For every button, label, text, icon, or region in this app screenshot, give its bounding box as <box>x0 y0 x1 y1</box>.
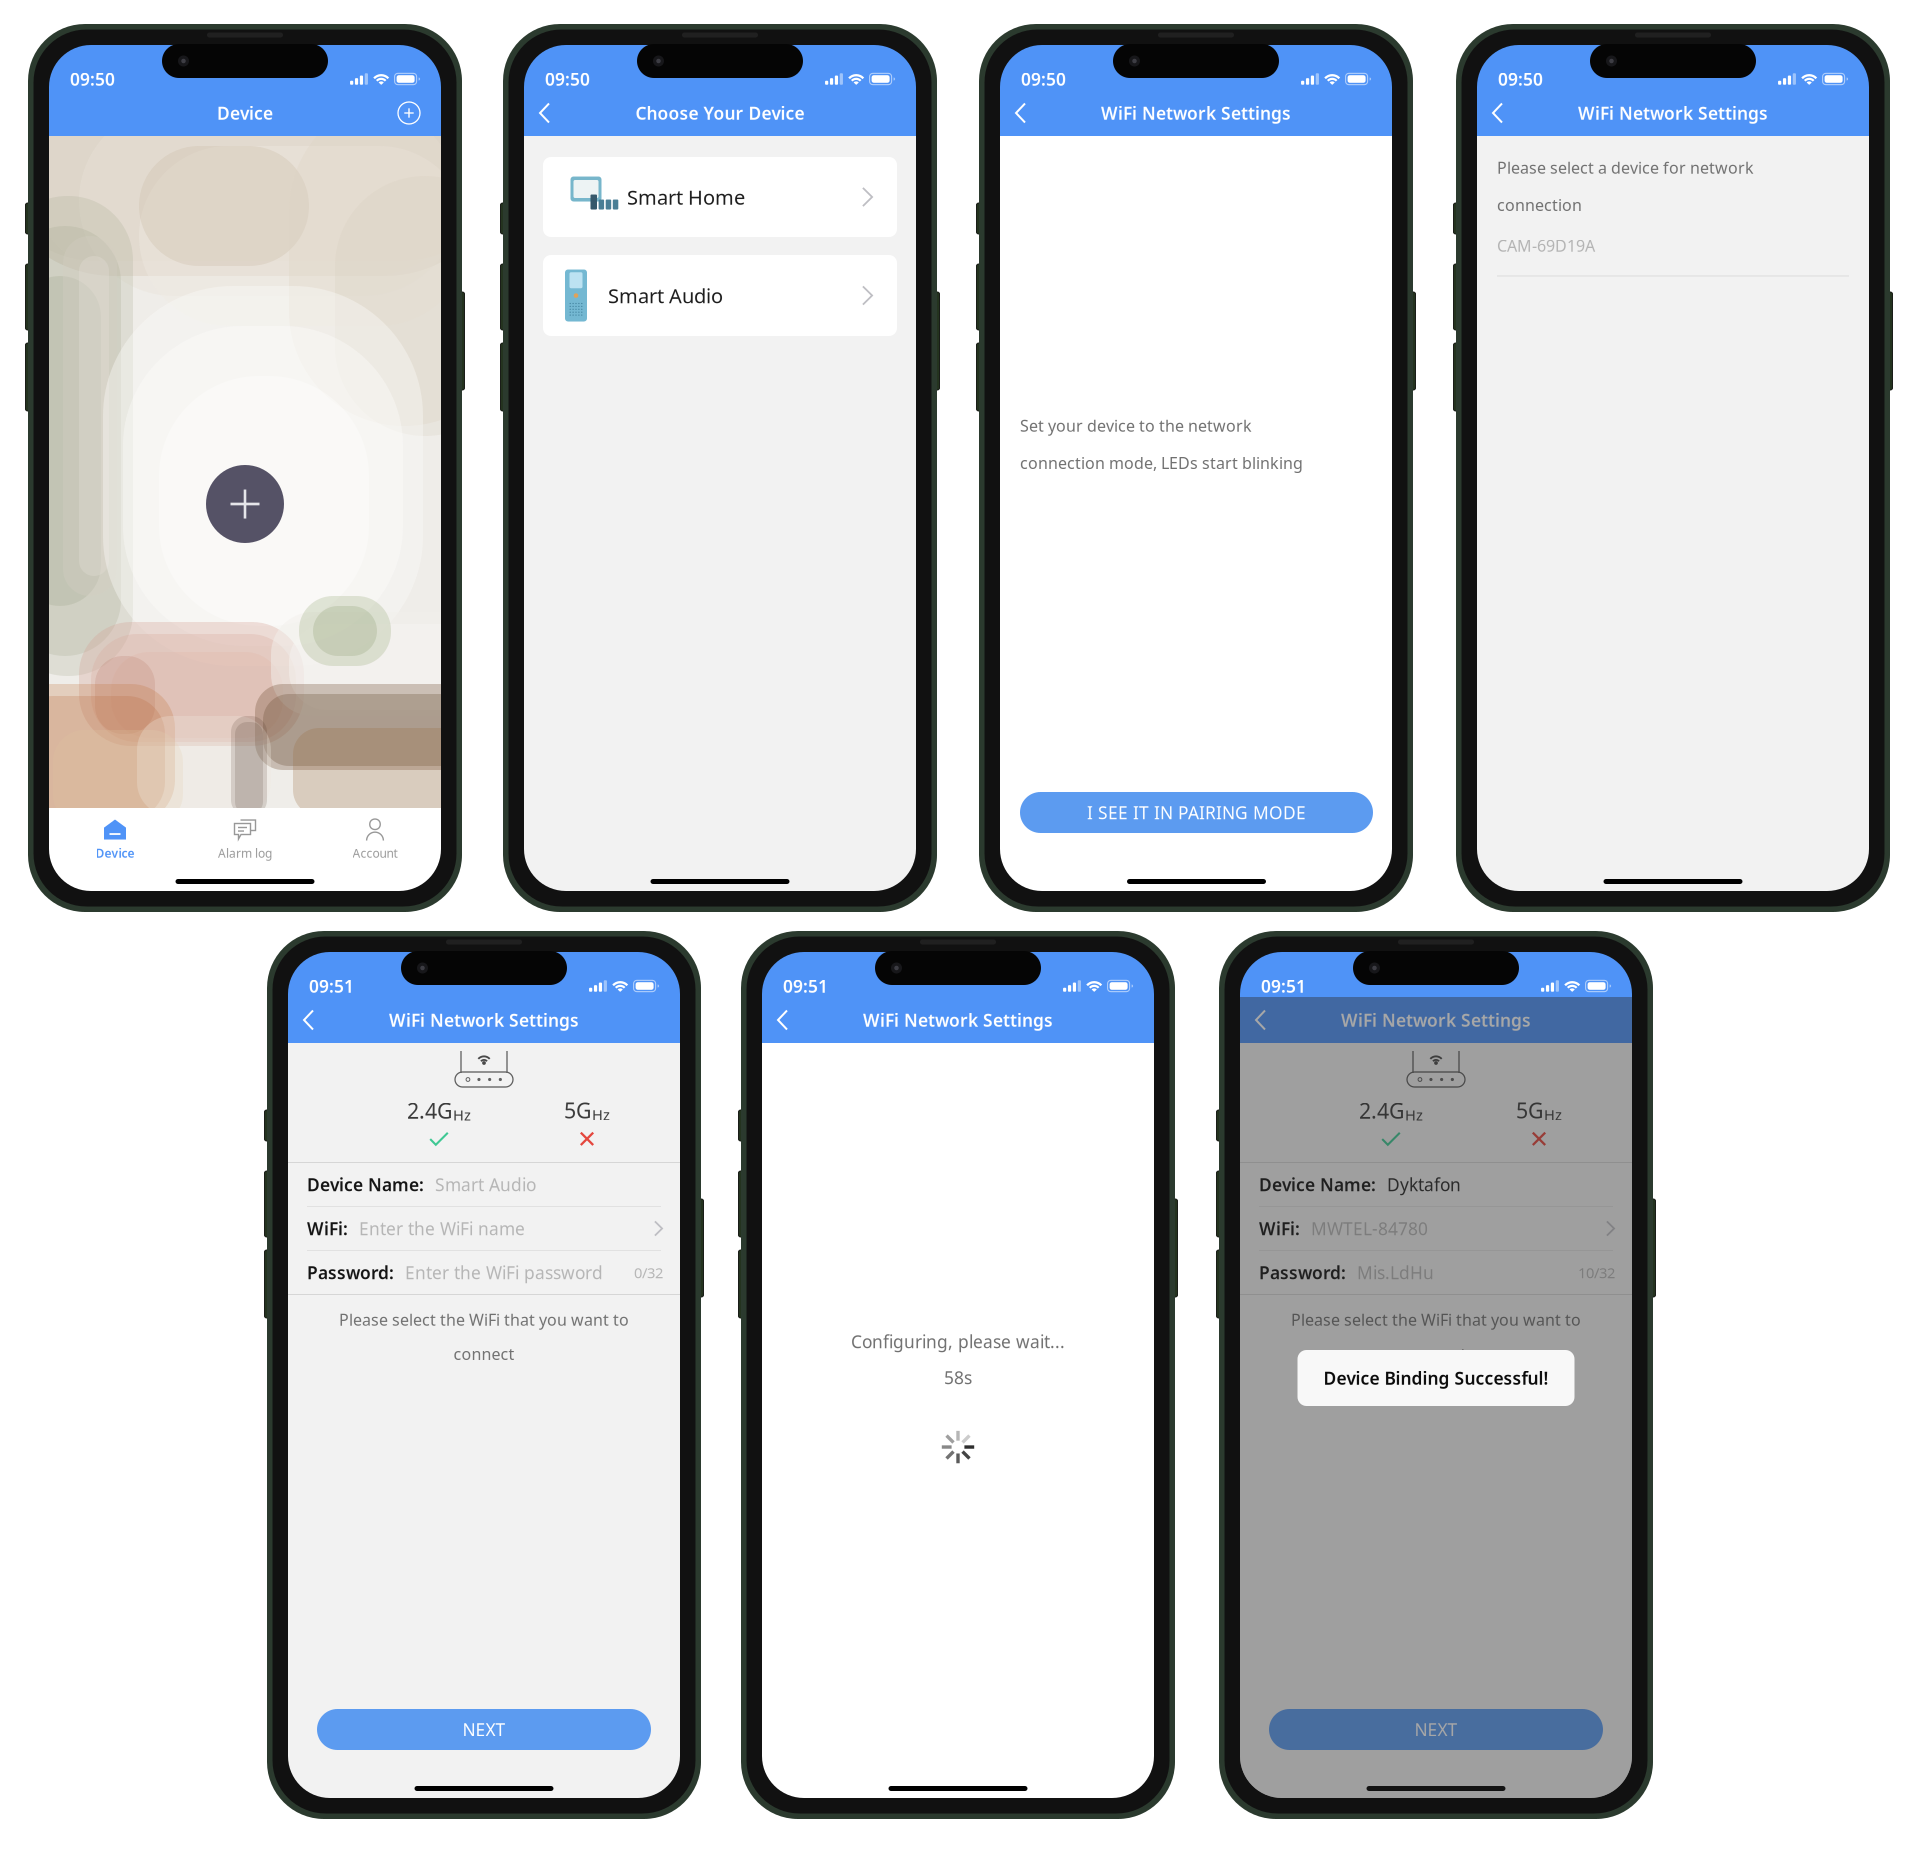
staticText: 5G <box>1516 1096 1544 1124</box>
button[interactable]: Smart Audio <box>543 255 897 336</box>
staticText: Smart Audio <box>608 282 723 309</box>
button[interactable]: NEXT <box>1269 1709 1603 1750</box>
staticText: Hz <box>1405 1105 1423 1125</box>
button[interactable]: Back <box>524 90 577 136</box>
button[interactable]: CAM-69D19A <box>1497 215 1849 275</box>
button[interactable]: Back <box>762 997 815 1043</box>
button[interactable]: WiFi: <box>1240 1207 1632 1250</box>
staticText: 2.4G <box>1359 1096 1405 1124</box>
staticText: Device <box>217 101 273 124</box>
staticText: WiFi Network Settings <box>863 1008 1053 1031</box>
button[interactable]: Smart Home <box>543 157 897 237</box>
staticText: connection <box>1497 194 1582 215</box>
staticText: CAM-69D19A <box>1497 235 1595 256</box>
button[interactable]: WiFi: <box>288 1207 680 1250</box>
staticText: 58s <box>944 1366 972 1389</box>
staticText: 09:50 <box>545 67 590 90</box>
staticText: Smart Audio <box>435 1173 536 1196</box>
button[interactable]: Back <box>288 997 341 1043</box>
staticText: Please select a device for network <box>1497 157 1754 178</box>
staticText: Set your device to the network <box>1020 415 1252 436</box>
staticText: Device Binding Successful! <box>1323 1366 1548 1389</box>
staticText: Enter the WiFi name <box>359 1217 525 1240</box>
staticText: Password: <box>307 1261 394 1284</box>
staticText: 2.4G <box>407 1096 453 1124</box>
staticText: 09:51 <box>783 974 828 997</box>
staticText: I SEE IT IN PAIRING MODE <box>1087 801 1306 824</box>
button[interactable]: Add camera <box>206 465 284 543</box>
staticText: Mis.LdHu <box>1357 1261 1434 1284</box>
staticText: MWTEL-84780 <box>1311 1217 1428 1240</box>
staticText: 09:51 <box>1261 974 1306 997</box>
staticText: WiFi: <box>1259 1217 1300 1240</box>
staticText: Enter the WiFi password <box>405 1261 603 1284</box>
staticText: NEXT <box>462 1718 505 1741</box>
staticText: Please select the WiFi that you want to <box>1291 1309 1581 1330</box>
button[interactable]: NEXT <box>317 1709 651 1750</box>
staticText: Alarm log <box>218 845 272 861</box>
button[interactable]: Account <box>310 816 440 864</box>
staticText: 10/32 <box>1578 1263 1615 1282</box>
staticText: Device <box>95 845 134 861</box>
staticText: 09:50 <box>1498 67 1543 90</box>
staticText: WiFi Network Settings <box>1101 101 1291 124</box>
staticText: Device Name: <box>1259 1173 1376 1196</box>
staticText: WiFi Network Settings <box>1578 101 1768 124</box>
staticText: 5G <box>564 1096 592 1124</box>
staticText: 0/32 <box>634 1263 663 1282</box>
button[interactable]: Back <box>1000 90 1053 136</box>
staticText: Dyktafon <box>1387 1173 1461 1196</box>
staticText: connection mode, LEDs start blinking <box>1020 452 1303 473</box>
staticText: Choose Your Device <box>635 101 804 124</box>
staticText: 09:51 <box>309 974 354 997</box>
staticText: Account <box>352 845 397 861</box>
staticText: Smart Home <box>627 184 745 210</box>
button[interactable]: Device <box>50 816 180 864</box>
button[interactable]: Alarm log <box>180 816 310 864</box>
button[interactable]: Back <box>1240 997 1293 1043</box>
staticText: Hz <box>453 1105 471 1125</box>
staticText: WiFi Network Settings <box>1341 1008 1531 1031</box>
staticText: connect <box>1405 1343 1466 1364</box>
staticText: 09:50 <box>1021 67 1066 90</box>
staticText: Password: <box>1259 1261 1346 1284</box>
staticText: WiFi Network Settings <box>389 1008 579 1031</box>
staticText: Hz <box>592 1105 610 1124</box>
staticText: WiFi: <box>307 1217 348 1240</box>
staticText: Configuring, please wait... <box>851 1330 1065 1353</box>
staticText: Please select the WiFi that you want to <box>339 1309 629 1330</box>
staticText: Device Name: <box>307 1173 424 1196</box>
button[interactable]: Back <box>1477 90 1530 136</box>
staticText: 09:50 <box>70 67 115 90</box>
button[interactable]: I SEE IT IN PAIRING MODE <box>1020 792 1373 833</box>
staticText: NEXT <box>1414 1718 1457 1741</box>
staticText: connect <box>453 1343 514 1364</box>
staticText: Hz <box>1544 1105 1562 1124</box>
button[interactable]: Add device <box>389 90 441 136</box>
